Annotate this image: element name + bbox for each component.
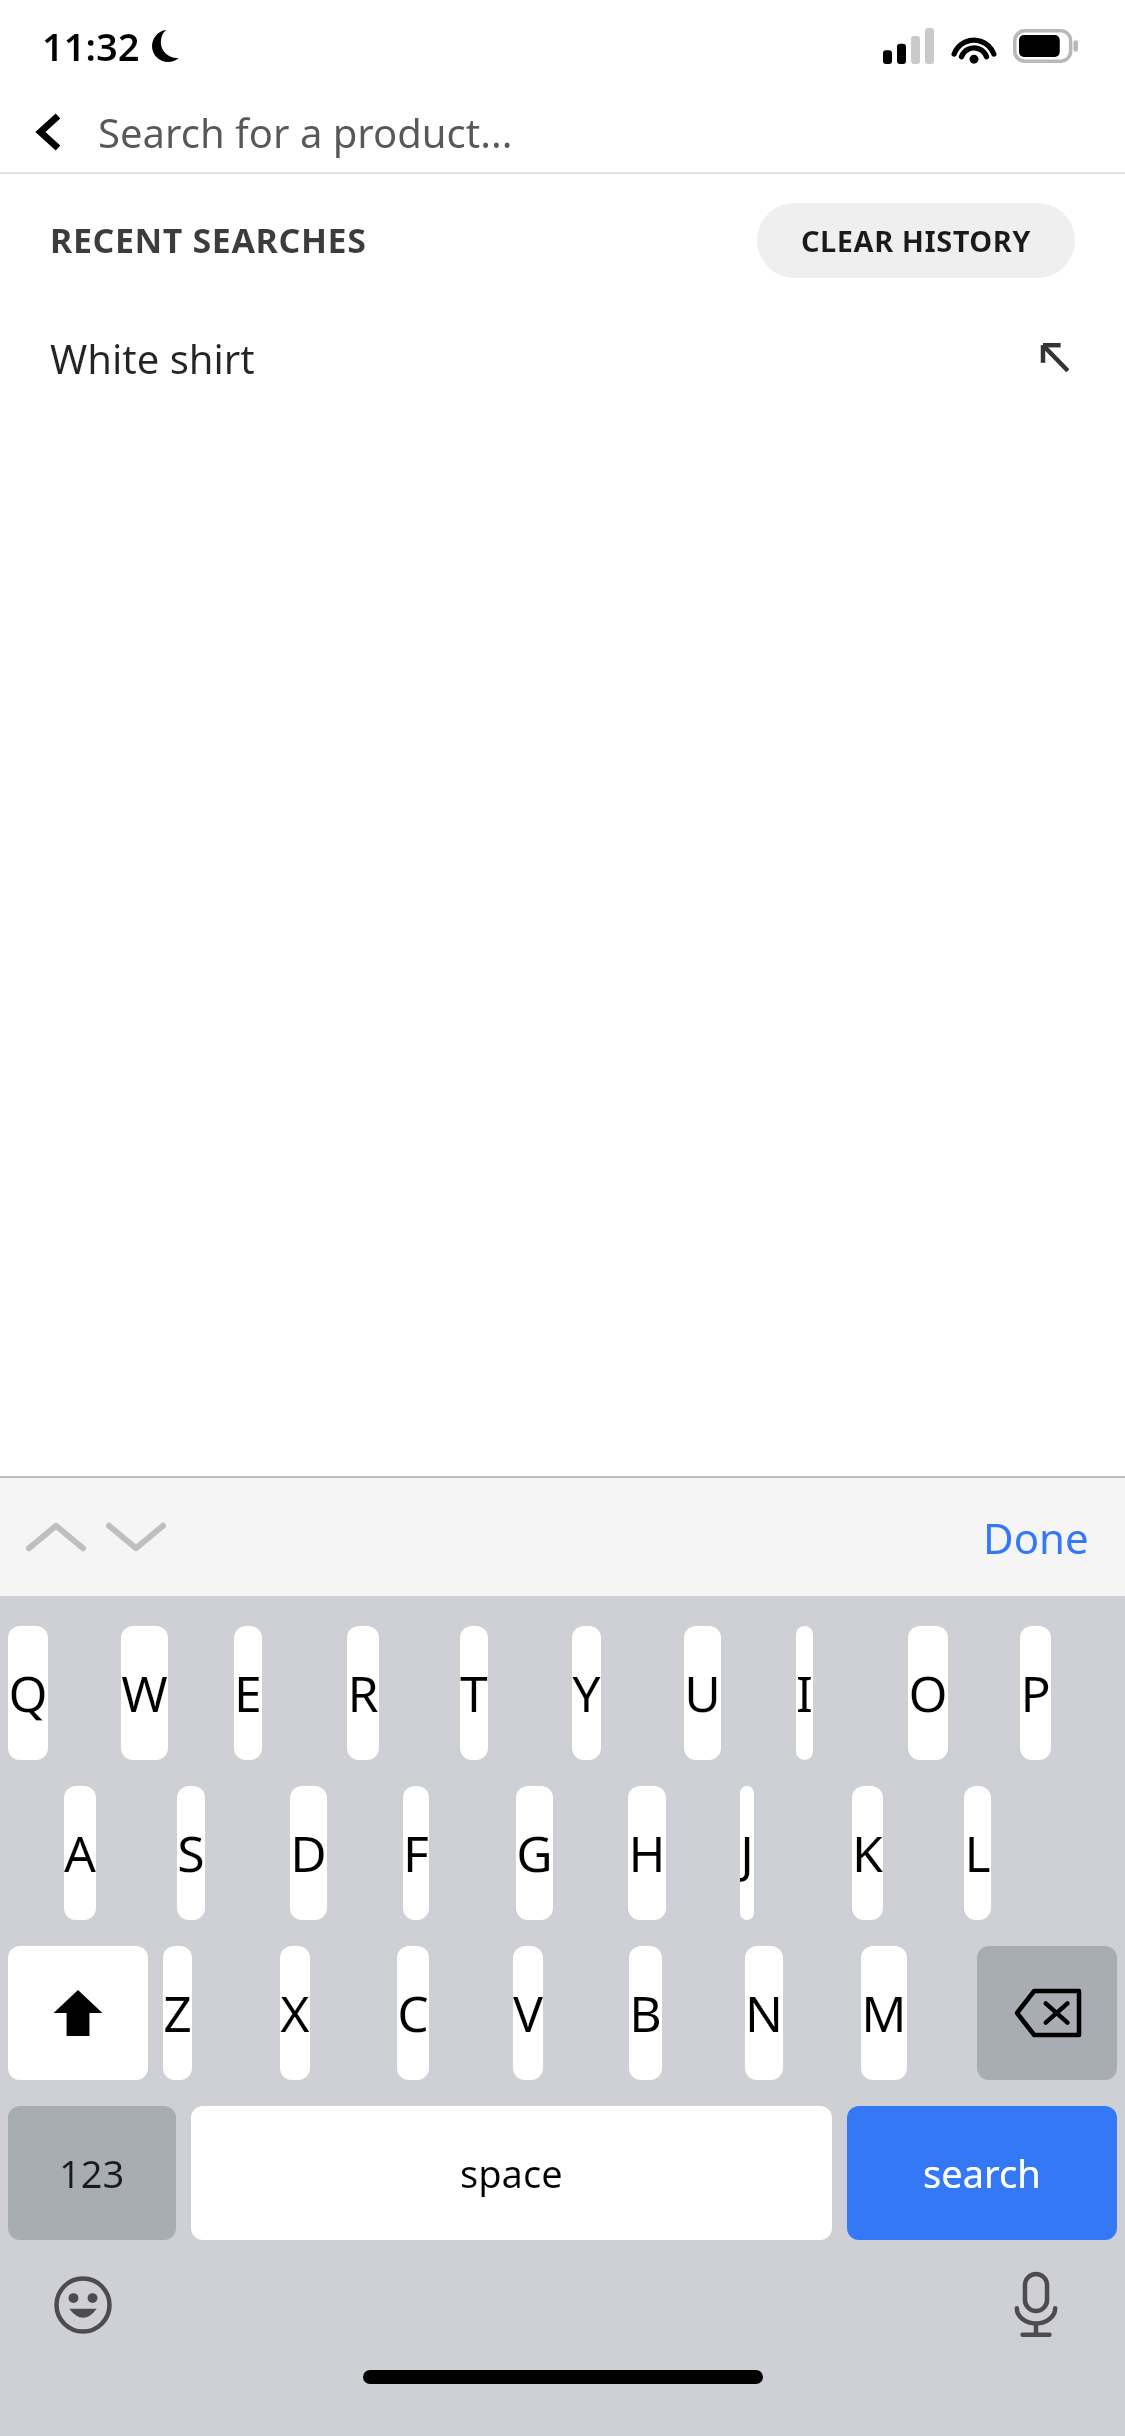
- button[interactable]: Y: [572, 1626, 601, 1760]
- staticText: O: [908, 1659, 948, 1727]
- button[interactable]: J: [740, 1786, 754, 1920]
- staticText: W: [121, 1659, 168, 1727]
- staticText: D: [290, 1819, 327, 1887]
- button[interactable]: Next field: [96, 1497, 176, 1577]
- button[interactable]: K: [852, 1786, 883, 1920]
- button[interactable]: Search for a product...: [98, 92, 1125, 172]
- staticText: I: [796, 1659, 813, 1727]
- staticText: B: [629, 1979, 662, 2047]
- staticText: Search for a product...: [98, 105, 513, 159]
- staticText: search: [923, 2147, 1041, 2199]
- staticText: 11:32: [42, 20, 140, 72]
- button[interactable]: X: [280, 1946, 310, 2080]
- staticText: Q: [8, 1659, 48, 1727]
- staticText: F: [403, 1819, 429, 1887]
- button[interactable]: F: [403, 1786, 429, 1920]
- button[interactable]: A: [64, 1786, 96, 1920]
- staticText: S: [177, 1819, 205, 1887]
- button[interactable]: Previous field: [16, 1497, 96, 1577]
- staticText: E: [234, 1659, 262, 1727]
- staticText: Z: [163, 1979, 192, 2047]
- button[interactable]: Shift: [8, 1946, 148, 2080]
- button[interactable]: T: [460, 1626, 488, 1760]
- button[interactable]: S: [177, 1786, 205, 1920]
- button[interactable]: Back: [14, 96, 86, 168]
- staticText: J: [740, 1819, 754, 1887]
- staticText: K: [852, 1819, 883, 1887]
- button[interactable]: M: [861, 1946, 907, 2080]
- button[interactable]: Emoji: [40, 2262, 126, 2348]
- button[interactable]: O: [908, 1626, 948, 1760]
- button[interactable]: I: [796, 1626, 813, 1760]
- staticText: V: [513, 1979, 543, 2047]
- button[interactable]: search: [847, 2106, 1117, 2240]
- staticText: RECENT SEARCHES: [50, 217, 367, 263]
- staticText: Y: [572, 1659, 601, 1727]
- button[interactable]: P: [1020, 1626, 1051, 1760]
- staticText: C: [397, 1979, 429, 2047]
- button[interactable]: B: [629, 1946, 662, 2080]
- button[interactable]: 123: [8, 2106, 176, 2240]
- button[interactable]: White shirt: [0, 312, 1125, 404]
- button[interactable]: C: [397, 1946, 429, 2080]
- staticText: P: [1020, 1659, 1051, 1727]
- staticText: R: [347, 1659, 379, 1727]
- staticText: N: [745, 1979, 783, 2047]
- button[interactable]: Backspace: [977, 1946, 1117, 2080]
- staticText: White shirt: [50, 331, 255, 385]
- button[interactable]: Done: [947, 1493, 1125, 1582]
- button[interactable]: G: [516, 1786, 553, 1920]
- staticText: T: [460, 1659, 488, 1727]
- staticText: G: [516, 1819, 553, 1887]
- button[interactable]: R: [347, 1626, 379, 1760]
- staticText: CLEAR HISTORY: [801, 221, 1031, 260]
- staticText: X: [280, 1979, 310, 2047]
- staticText: Done: [983, 1509, 1089, 1566]
- button[interactable]: Z: [163, 1946, 192, 2080]
- staticText: U: [684, 1659, 721, 1727]
- staticText: A: [64, 1819, 96, 1887]
- staticText: M: [861, 1979, 907, 2047]
- staticText: H: [628, 1819, 666, 1887]
- button[interactable]: H: [628, 1786, 666, 1920]
- staticText: 123: [59, 2147, 125, 2199]
- staticText: space: [460, 2147, 563, 2199]
- button[interactable]: Dictation: [993, 2262, 1079, 2348]
- button[interactable]: U: [684, 1626, 721, 1760]
- button[interactable]: W: [121, 1626, 168, 1760]
- button[interactable]: N: [745, 1946, 783, 2080]
- staticText: L: [964, 1819, 991, 1887]
- button[interactable]: V: [513, 1946, 543, 2080]
- button[interactable]: E: [234, 1626, 262, 1760]
- button[interactable]: space: [191, 2106, 832, 2240]
- button[interactable]: D: [290, 1786, 327, 1920]
- button[interactable]: Q: [8, 1626, 48, 1760]
- button[interactable]: L: [964, 1786, 991, 1920]
- button[interactable]: CLEAR HISTORY: [757, 203, 1075, 278]
